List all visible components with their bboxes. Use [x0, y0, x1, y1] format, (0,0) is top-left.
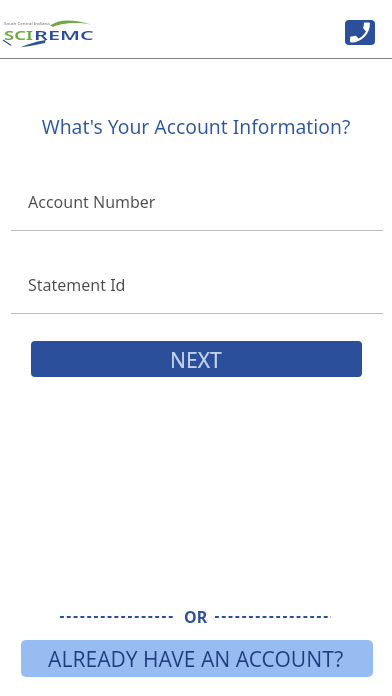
staticText: Account Number	[28, 191, 156, 213]
staticText: South Central Indiana	[4, 21, 50, 26]
staticText: OR	[184, 606, 208, 628]
button[interactable]: Call	[345, 20, 375, 45]
staticText: SCI	[4, 26, 34, 44]
staticText: REMC	[34, 26, 94, 44]
button[interactable]: NEXT	[31, 341, 362, 377]
staticText: What's Your Account Information?	[0, 113, 392, 139]
button[interactable]: ALREADY HAVE AN ACCOUNT?	[21, 640, 373, 677]
staticText: Statement Id	[28, 274, 126, 296]
staticText: ALREADY HAVE AN ACCOUNT?	[48, 645, 344, 674]
staticText: NEXT	[170, 346, 222, 375]
